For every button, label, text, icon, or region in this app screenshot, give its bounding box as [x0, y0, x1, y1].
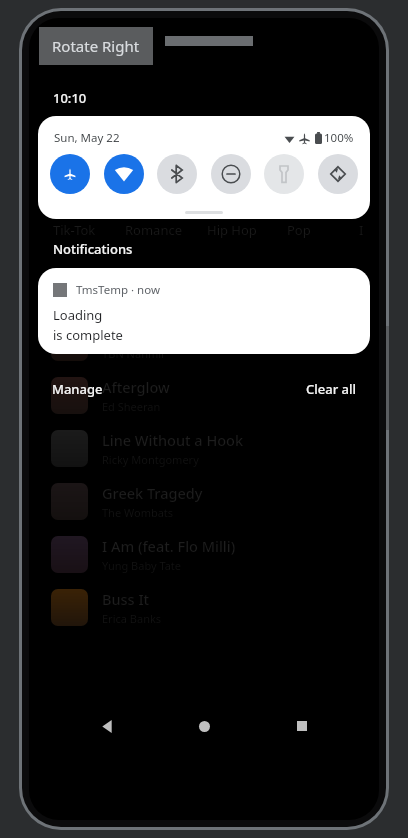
button[interactable]: Romance [125, 221, 183, 239]
button[interactable]: Pop [287, 221, 311, 239]
button[interactable]: Greek Tragedy [29, 475, 379, 528]
staticText: Greek Tragedy [102, 483, 203, 503]
button[interactable]: Line Without a Hook [29, 422, 379, 475]
staticText: YBN Nahmir [102, 346, 166, 361]
staticText: is complete [53, 326, 123, 344]
button[interactable]: Bluetooth [157, 154, 197, 194]
staticText: Clear all [306, 380, 356, 398]
staticText: Buss It [102, 589, 150, 609]
button[interactable]: Afterglow [29, 369, 379, 422]
button[interactable]: Wi-Fi [104, 154, 144, 194]
staticText: 10:10 [53, 89, 87, 107]
staticText: Sun, May 22 [54, 130, 120, 146]
button[interactable]: I [359, 221, 364, 239]
staticText: Yung Baby Tate [102, 558, 182, 573]
staticText: Hip Hop [207, 221, 257, 239]
staticText: Romance [125, 221, 183, 239]
staticText: 100% [324, 130, 354, 146]
button[interactable]: Hip Hop [207, 221, 257, 239]
staticText: Studio Killers [102, 293, 170, 308]
button[interactable]: Buss It [29, 581, 379, 634]
staticText: Manage [52, 380, 103, 398]
staticText: Pop [287, 221, 311, 239]
staticText: Rotate Right [52, 36, 140, 56]
button[interactable]: Manage [38, 374, 117, 404]
button[interactable]: Home [184, 706, 224, 746]
button[interactable]: Recent apps [282, 706, 322, 746]
staticText: Tik-Tok [53, 221, 96, 239]
button[interactable]: Do not disturb [211, 154, 251, 194]
staticText: Jenny [102, 271, 141, 291]
button[interactable]: Jenny [29, 263, 379, 316]
staticText: Loading [53, 306, 103, 324]
button[interactable]: Airplane mode [50, 154, 90, 194]
staticText: Opp Stoppa [102, 324, 184, 344]
button[interactable]: Auto-rotate [318, 154, 358, 194]
button[interactable]: Flashlight [264, 154, 304, 194]
button[interactable]: TmsTemp · now [38, 268, 370, 354]
staticText: TmsTemp · now [76, 282, 160, 298]
button[interactable]: Rotate Right [39, 27, 153, 65]
staticText: I Am (feat. Flo Milli) [102, 536, 236, 556]
staticText: Afterglow [102, 377, 170, 397]
button[interactable]: Opp Stoppa [29, 316, 379, 369]
staticText: I [359, 221, 364, 239]
button[interactable]: Clear all [292, 374, 370, 404]
button[interactable]: Tik-Tok [53, 221, 96, 239]
staticText: The Wombats [102, 505, 174, 520]
staticText: Ed Sheeran [102, 399, 161, 414]
staticText: Notifications [53, 240, 133, 258]
staticText: Line Without a Hook [102, 430, 244, 450]
staticText: Erica Banks [102, 611, 162, 626]
button[interactable]: I Am (feat. Flo Milli) [29, 528, 379, 581]
button[interactable]: Back [87, 706, 127, 746]
staticText: Ricky Montgomery [102, 452, 199, 467]
